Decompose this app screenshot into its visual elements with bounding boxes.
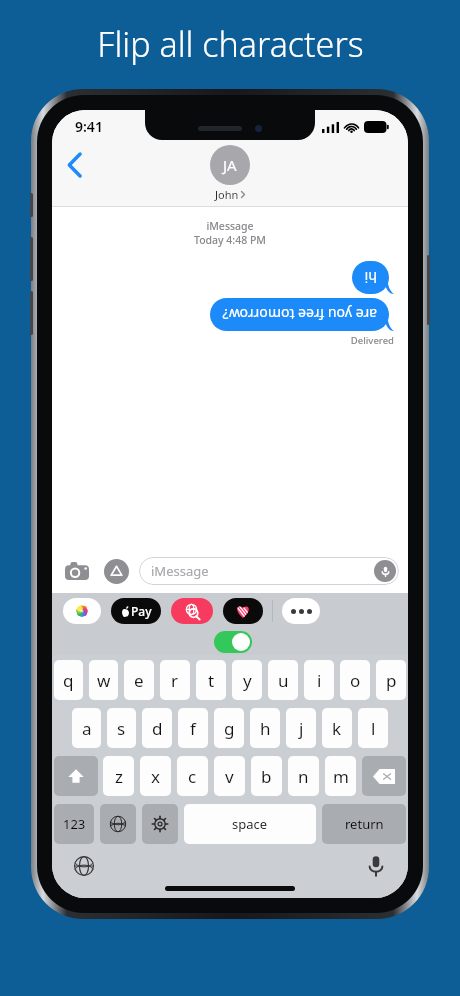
button[interactable]: r	[160, 660, 190, 700]
button[interactable]: c	[177, 756, 208, 796]
staticText: Flip all characters	[97, 21, 364, 67]
staticText: v	[225, 765, 234, 788]
staticText: John	[215, 187, 239, 202]
button[interactable]: Camera	[61, 555, 93, 587]
staticText: iMessage	[66, 219, 394, 233]
button[interactable]: Change keyboard	[100, 804, 136, 844]
button[interactable]: space	[184, 804, 316, 844]
button[interactable]: p	[376, 660, 406, 700]
button[interactable]: g	[214, 708, 244, 748]
staticText: c	[188, 765, 197, 788]
other: Dictate	[374, 560, 396, 582]
button[interactable]: y	[232, 660, 262, 700]
staticText: g	[224, 717, 235, 740]
button[interactable]: s	[107, 708, 136, 748]
button[interactable]: o	[340, 660, 370, 700]
staticText: z	[115, 765, 123, 788]
staticText: JA	[223, 155, 237, 175]
staticText: iMessage	[151, 562, 209, 580]
button[interactable]: iMessage	[139, 557, 399, 585]
button[interactable]: m	[325, 756, 356, 796]
button[interactable]: Search app	[171, 598, 213, 624]
staticText: y	[243, 669, 252, 692]
staticText: p	[386, 669, 397, 692]
button[interactable]: hi	[352, 261, 394, 294]
staticText: h	[260, 717, 271, 740]
button[interactable]: Flip characters app	[223, 598, 263, 624]
staticText: u	[278, 669, 289, 692]
button[interactable]: Apple Pay	[111, 598, 161, 624]
button[interactable]: Change keyboard	[69, 851, 99, 881]
button[interactable]: Shift	[54, 756, 98, 796]
button[interactable]: Backspace	[362, 756, 406, 796]
button[interactable]: are you free tomorrow?	[210, 298, 394, 331]
staticText: x	[151, 765, 160, 788]
button[interactable]: i	[304, 660, 334, 700]
staticText: q	[63, 669, 74, 692]
staticText: 9:41	[75, 117, 103, 136]
button[interactable]: q	[54, 660, 83, 700]
button[interactable]: f	[178, 708, 208, 748]
button[interactable]: h	[250, 708, 280, 748]
staticText: o	[350, 669, 361, 692]
button[interactable]: Keyboard settings	[142, 804, 178, 844]
staticText: space	[232, 815, 268, 833]
staticText: hi	[364, 268, 377, 287]
staticText: w	[97, 669, 111, 692]
staticText: are you free tomorrow?	[222, 305, 377, 324]
staticText: Pay	[131, 603, 152, 619]
button[interactable]: Dictate	[361, 851, 391, 881]
button[interactable]: Numbers	[54, 804, 94, 844]
button[interactable]: return	[322, 804, 406, 844]
staticText: Delivered	[66, 334, 394, 347]
staticText: f	[190, 717, 196, 740]
staticText: l	[371, 717, 376, 740]
button[interactable]: v	[214, 756, 245, 796]
button[interactable]: k	[322, 708, 352, 748]
staticText: i	[317, 669, 322, 692]
button[interactable]: JA	[210, 145, 250, 202]
button[interactable]: Toggle flip	[214, 631, 252, 653]
button[interactable]: d	[142, 708, 172, 748]
staticText: n	[298, 765, 309, 788]
staticText: j	[299, 717, 304, 740]
staticText: b	[261, 765, 272, 788]
button[interactable]: b	[251, 756, 282, 796]
button[interactable]: More apps	[282, 598, 320, 624]
staticText: return	[345, 815, 384, 833]
button[interactable]: z	[103, 756, 134, 796]
button[interactable]: n	[288, 756, 319, 796]
staticText: d	[152, 717, 163, 740]
button[interactable]: Back	[52, 143, 96, 187]
button[interactable]: e	[124, 660, 154, 700]
staticText: e	[134, 669, 144, 692]
button[interactable]: x	[140, 756, 171, 796]
button[interactable]: t	[196, 660, 226, 700]
button[interactable]: Photos	[63, 598, 101, 624]
staticText: r	[171, 669, 179, 692]
button[interactable]: w	[89, 660, 118, 700]
button[interactable]: u	[268, 660, 298, 700]
button[interactable]: l	[358, 708, 388, 748]
button[interactable]: a	[72, 708, 101, 748]
staticText: s	[117, 717, 126, 740]
staticText: m	[333, 765, 349, 788]
staticText: t	[208, 669, 215, 692]
staticText: 123	[63, 815, 86, 833]
button[interactable]: j	[286, 708, 316, 748]
button[interactable]: App Store	[100, 555, 132, 587]
staticText: Today 4:48 PM	[66, 233, 394, 247]
staticText: k	[332, 717, 342, 740]
staticText: a	[82, 717, 92, 740]
